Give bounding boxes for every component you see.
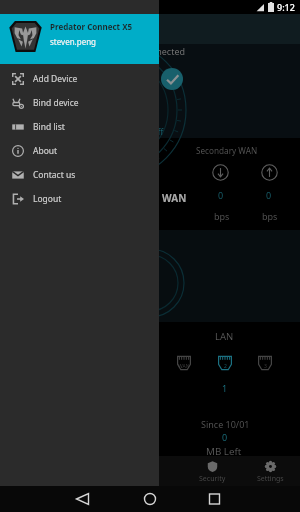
staticText: Predator Connect X5 bbox=[50, 21, 133, 32]
staticText: 9:12 bbox=[277, 1, 295, 13]
staticText: LAN bbox=[215, 330, 234, 343]
staticText: Bind list bbox=[33, 121, 65, 133]
staticText: Security bbox=[199, 474, 226, 484]
staticText: Since 10/01 bbox=[201, 418, 250, 430]
staticText: Contact us bbox=[33, 169, 76, 181]
staticText: Secondary WAN bbox=[196, 145, 258, 156]
button[interactable]: Bind device bbox=[0, 91, 159, 115]
staticText: Wi-Fi 5G off bbox=[120, 126, 164, 137]
button[interactable]: Predator Connect X5 bbox=[0, 14, 159, 64]
staticText: 0 bbox=[218, 189, 224, 201]
staticText: bps bbox=[214, 210, 230, 222]
staticText: Bind device bbox=[33, 97, 79, 109]
staticText: 1 bbox=[222, 382, 228, 394]
staticText: 2 bbox=[224, 363, 227, 370]
button[interactable]: Security bbox=[185, 456, 239, 486]
staticText: 0 bbox=[222, 431, 228, 443]
staticText: WAN bbox=[178, 363, 190, 370]
staticText: steven.peng bbox=[50, 36, 97, 47]
staticText: bps bbox=[262, 210, 278, 222]
button[interactable]: About bbox=[0, 139, 159, 163]
other: Upload bbox=[261, 164, 278, 181]
staticText: 3 bbox=[264, 363, 267, 370]
staticText: WAN bbox=[162, 191, 187, 205]
staticText: 0 bbox=[266, 189, 272, 201]
button[interactable]: Settings bbox=[243, 456, 297, 486]
staticText: Logout bbox=[33, 193, 62, 205]
button[interactable]: Logout bbox=[0, 187, 159, 211]
staticText: MB Left bbox=[206, 445, 242, 458]
button[interactable]: Bind list bbox=[0, 115, 159, 139]
button[interactable]: Contact us bbox=[0, 163, 159, 187]
other: Download bbox=[212, 164, 229, 181]
staticText: Internet connected bbox=[104, 45, 186, 57]
staticText: About bbox=[33, 145, 58, 157]
staticText: Add Device bbox=[33, 73, 78, 85]
button[interactable]: Add Device bbox=[0, 67, 159, 91]
staticText: Settings bbox=[257, 474, 284, 484]
